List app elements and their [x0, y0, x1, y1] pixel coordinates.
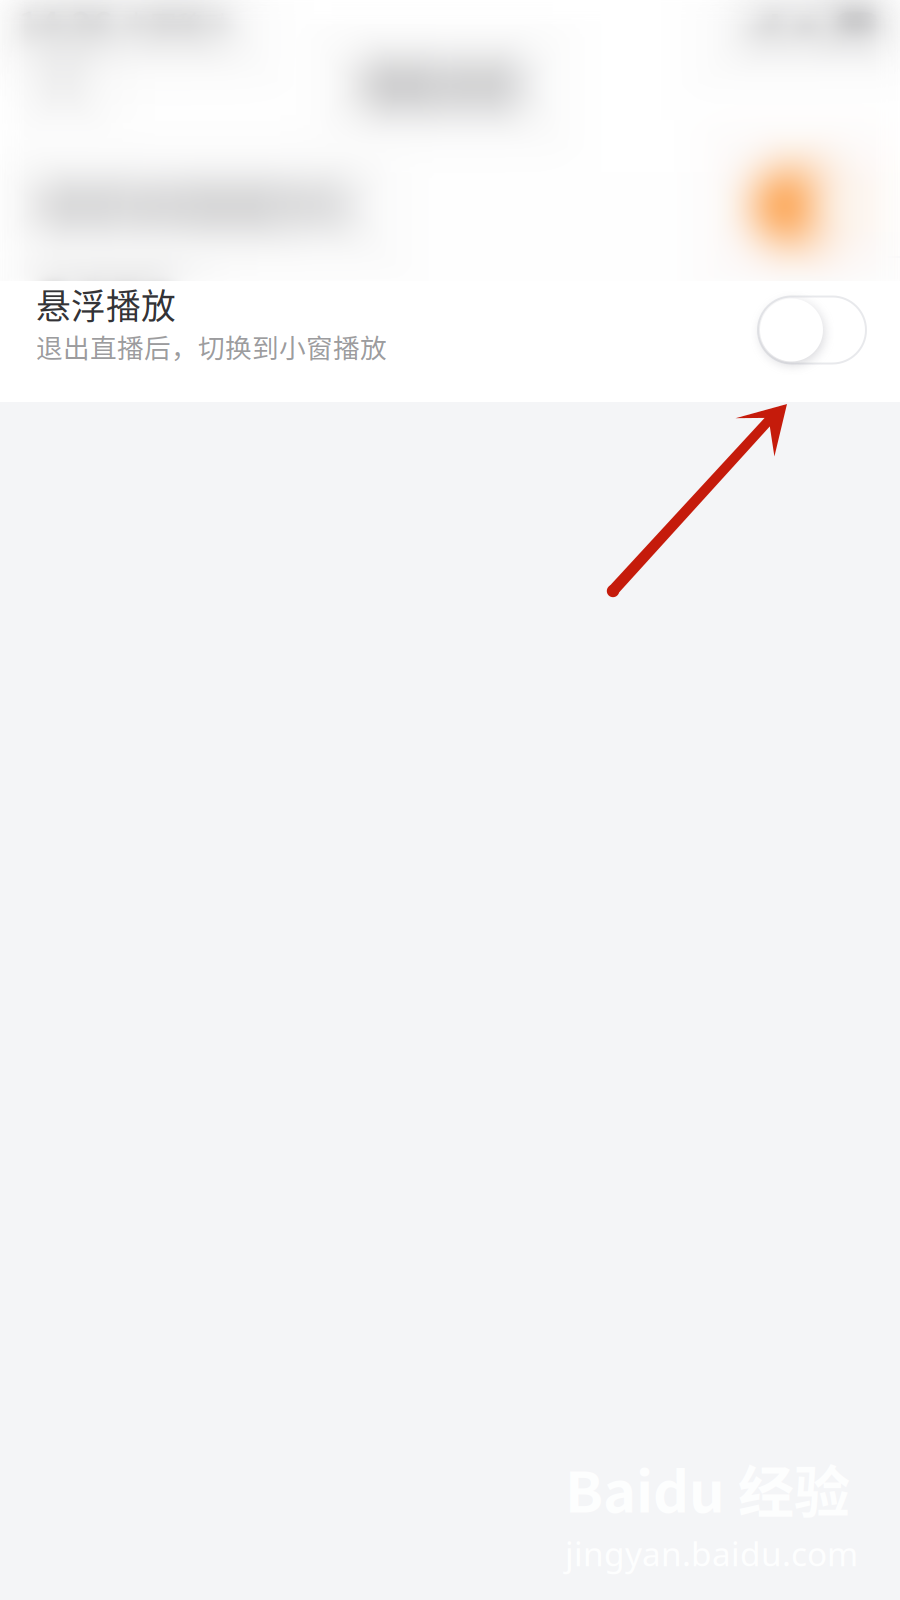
- button[interactable]: 悬浮播放: [0, 258, 900, 402]
- staticText: 中国移动: [123, 4, 231, 42]
- staticText: 退出直播后，切换到小窗播放: [36, 327, 387, 366]
- button[interactable]: 锁屏时继续播放声音: [0, 130, 900, 256]
- staticText: 锁屏时继续播放声音: [36, 179, 351, 229]
- staticText: Baidu 经验: [565, 1447, 850, 1529]
- staticText: 14:36: [18, 0, 113, 49]
- button[interactable]: 返回: [0, 46, 94, 120]
- staticText: 播放设置: [363, 55, 519, 111]
- staticText: 悬浮播放: [36, 279, 176, 329]
